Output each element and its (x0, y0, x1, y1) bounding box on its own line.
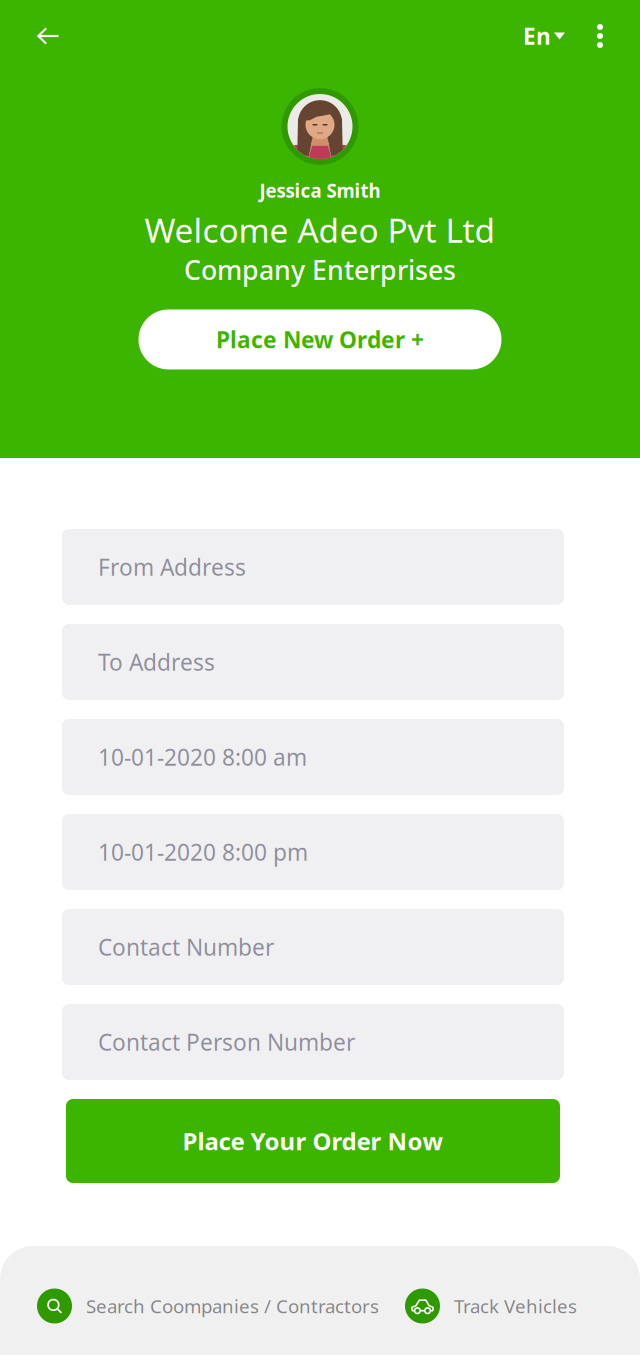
button[interactable]: Contact Number (62, 909, 564, 985)
button[interactable]: En (494, 7, 574, 65)
staticText: 10-01-2020 8:00 am (98, 742, 307, 772)
button[interactable]: From Address (62, 529, 564, 605)
staticText: Place New Order + (216, 324, 424, 354)
button[interactable]: Back (0, 10, 81, 62)
staticText: 10-01-2020 8:00 pm (98, 837, 308, 867)
staticText: En (523, 21, 551, 51)
button[interactable]: 10-01-2020 8:00 am (62, 719, 564, 795)
button[interactable]: Track Vehicles (405, 1288, 577, 1323)
staticText: Welcome Adeo Pvt Ltd (144, 208, 495, 252)
button[interactable]: Place New Order + (138, 309, 501, 369)
button[interactable]: Contact Person Number (62, 1004, 564, 1080)
button[interactable]: More options (574, 15, 640, 57)
staticText: Search Coompanies / Contractors (86, 1294, 379, 1318)
button[interactable]: To Address (62, 624, 564, 700)
staticText: From Address (98, 552, 246, 582)
staticText: Company Enterprises (184, 252, 456, 287)
staticText: Jessica Smith (259, 178, 380, 203)
staticText: To Address (98, 647, 215, 677)
button[interactable]: Search Coompanies / Contractors (37, 1288, 379, 1323)
button[interactable]: 10-01-2020 8:00 pm (62, 814, 564, 890)
button[interactable]: Place Your Order Now (62, 1099, 564, 1183)
staticText: Contact Number (98, 932, 274, 962)
staticText: Contact Person Number (98, 1027, 355, 1057)
staticText: Track Vehicles (454, 1294, 577, 1318)
staticText: Place Your Order Now (182, 1125, 443, 1157)
